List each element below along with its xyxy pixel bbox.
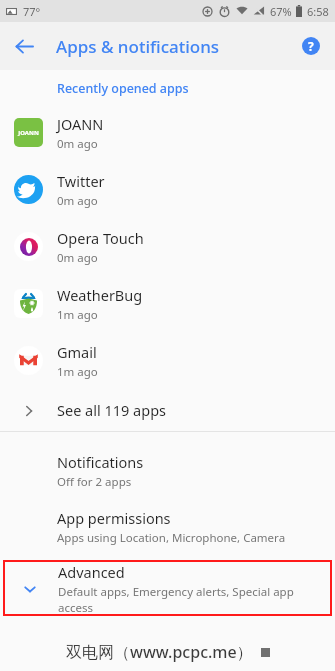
staticText: Gmail	[57, 342, 97, 362]
staticText: 1m ago	[57, 364, 98, 380]
staticText: 0m ago	[57, 250, 98, 266]
staticText: See all 119 apps	[57, 400, 167, 420]
staticText: 双电网（www.pcpc.me）	[66, 641, 253, 663]
button[interactable]: Gmail	[0, 332, 335, 389]
staticText: JOANN	[57, 114, 104, 134]
staticText: Notifications	[57, 452, 144, 472]
button[interactable]: App permissions	[0, 506, 335, 548]
button[interactable]: Twitter	[0, 161, 335, 218]
staticText: Default apps, Emergency alerts, Special …	[58, 584, 330, 614]
staticText: Off for 2 apps	[57, 474, 132, 490]
staticText: 0m ago	[57, 193, 98, 209]
staticText: Twitter	[57, 171, 105, 191]
button[interactable]: Help	[287, 22, 335, 70]
staticText: ?	[308, 38, 314, 54]
staticText: 77°	[23, 4, 41, 19]
staticText: JOANN	[18, 129, 39, 137]
staticText: 6:58	[307, 4, 329, 19]
staticText: App permissions	[57, 508, 171, 528]
staticText: Advanced	[58, 562, 125, 582]
staticText: 1m ago	[57, 307, 98, 323]
staticText: 67%	[270, 4, 292, 19]
button[interactable]: Notifications	[0, 450, 335, 492]
button[interactable]: Opera Touch	[0, 218, 335, 275]
button[interactable]: Advanced	[5, 562, 330, 614]
staticText: Recently opened apps	[57, 80, 189, 97]
staticText: 0m ago	[57, 136, 98, 152]
staticText: WeatherBug	[57, 285, 143, 305]
button[interactable]: WeatherBug	[0, 275, 335, 332]
staticText: Apps & notifications	[56, 35, 220, 58]
button[interactable]: JOANN	[0, 104, 335, 161]
button[interactable]: Back	[0, 22, 48, 70]
button[interactable]: See all 119 apps	[0, 389, 335, 431]
staticText: Opera Touch	[57, 228, 144, 248]
staticText: Apps using Location, Microphone, Camera	[57, 530, 286, 546]
